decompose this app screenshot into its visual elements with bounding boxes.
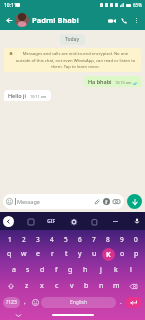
button[interactable]: g (63, 262, 78, 278)
button[interactable]: Back (3, 14, 15, 26)
staticText: Today (65, 36, 80, 43)
button[interactable]: m (109, 278, 124, 294)
button[interactable]: w (17, 246, 31, 262)
staticText: ?123 (6, 299, 17, 306)
button[interactable]: Ha bhabi (84, 76, 141, 87)
button[interactable]: 6 (73, 232, 87, 246)
button[interactable]: y (73, 246, 87, 262)
button[interactable]: 8 (101, 232, 115, 246)
button[interactable]: o (115, 246, 129, 262)
staticText: K (106, 250, 111, 260)
staticText: z (25, 281, 29, 291)
staticText: 3 (36, 235, 40, 244)
button[interactable]: x (34, 278, 49, 294)
staticText: b (84, 281, 89, 291)
button[interactable]: h (78, 262, 93, 278)
button[interactable]: Backspace (124, 278, 143, 294)
staticText: w (21, 249, 27, 259)
button[interactable]: c (49, 278, 64, 294)
staticText: Messages and calls are end-to-end encryp… (15, 51, 136, 69)
button[interactable]: 0 (129, 232, 143, 246)
button[interactable]: Attach (93, 198, 100, 205)
staticText: u (92, 249, 97, 259)
button[interactable]: Message (3, 194, 124, 209)
button[interactable]: 9 (115, 232, 129, 246)
staticText: q (7, 249, 12, 259)
button[interactable]: Hide keyboard (0, 310, 36, 320)
button[interactable]: f (49, 262, 63, 278)
button[interactable]: Video call (105, 14, 118, 27)
staticText: n (99, 281, 104, 291)
button[interactable]: 7 (87, 232, 101, 246)
staticText: English (70, 299, 88, 306)
staticText: h (83, 265, 88, 275)
button[interactable]: z (20, 278, 34, 294)
button[interactable]: Camera (113, 198, 120, 205)
staticText: l (130, 265, 132, 275)
staticText: e (36, 249, 40, 259)
button[interactable]: Messages and calls are end-to-end encryp… (4, 48, 141, 72)
button[interactable]: r (45, 246, 59, 262)
button[interactable]: More (111, 217, 120, 226)
button[interactable]: v (64, 278, 79, 294)
button[interactable]: Clipboard (90, 217, 99, 226)
button[interactable]: a (7, 262, 21, 278)
button[interactable]: k (108, 262, 123, 278)
staticText: Padmi Bhabi (32, 15, 79, 25)
button[interactable]: GIF (47, 218, 56, 225)
button[interactable]: 1 (2, 232, 17, 246)
button[interactable]: p (129, 246, 143, 262)
button[interactable]: e (31, 246, 45, 262)
button[interactable]: Padmi Bhabi (15, 10, 105, 30)
button[interactable]: l (123, 262, 138, 278)
button[interactable]: u (87, 246, 101, 262)
button[interactable]: 2 (17, 232, 31, 246)
button[interactable]: Shift (2, 278, 20, 294)
staticText: v (70, 281, 74, 291)
button[interactable]: Rupee (103, 198, 110, 205)
staticText: a (12, 265, 16, 275)
staticText: 0 (134, 235, 138, 244)
button[interactable]: ?123 (3, 297, 20, 308)
button[interactable]: Hello ji (4, 90, 51, 101)
staticText: g (68, 265, 73, 275)
button[interactable]: j (93, 262, 108, 278)
staticText: o (120, 249, 125, 259)
staticText: ₹ (105, 199, 108, 205)
staticText: Ha bhabi (88, 78, 112, 85)
button[interactable]: K (101, 246, 115, 262)
button[interactable]: t (59, 246, 73, 262)
staticText: 5 (64, 235, 68, 244)
button[interactable]: Voice message (127, 194, 142, 209)
staticText: r (51, 249, 54, 259)
button[interactable]: Comma (20, 294, 30, 310)
button[interactable]: q (2, 246, 17, 262)
staticText: s (26, 265, 30, 275)
button[interactable]: b (79, 278, 94, 294)
staticText: 65% (133, 2, 142, 8)
button[interactable]: 3 (31, 232, 45, 246)
staticText: Hello ji (8, 92, 27, 99)
button[interactable]: 5 (59, 232, 73, 246)
button[interactable]: Voice input (132, 216, 142, 226)
staticText: GIF (47, 218, 56, 225)
button[interactable]: 4 (45, 232, 59, 246)
staticText: 8 (106, 235, 110, 244)
staticText: , (24, 298, 26, 306)
button[interactable]: Voice call (118, 14, 131, 27)
staticText: x (40, 281, 44, 291)
button[interactable]: n (94, 278, 109, 294)
button[interactable]: d (35, 262, 49, 278)
button[interactable]: English (41, 297, 116, 308)
button[interactable]: Enter (125, 297, 142, 308)
button[interactable]: More options (131, 15, 142, 26)
button[interactable]: Settings (69, 217, 78, 226)
button[interactable]: Stickers (26, 217, 35, 226)
button[interactable]: Period (116, 294, 125, 310)
staticText: 7 (92, 235, 96, 244)
button[interactable]: Emoji (30, 294, 41, 310)
staticText: 10:11 am (30, 94, 47, 99)
button[interactable]: Expand toolbar (3, 216, 14, 227)
button[interactable]: s (21, 262, 35, 278)
staticText: 1 (8, 235, 12, 244)
